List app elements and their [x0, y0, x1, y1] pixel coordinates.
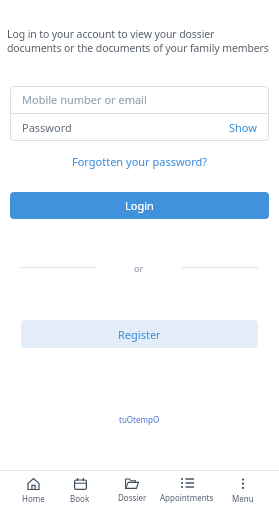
button[interactable]: Book — [50, 471, 110, 512]
button[interactable]: Menu — [213, 471, 273, 512]
button[interactable]: Show — [229, 120, 257, 135]
staticText: tuOtempO — [119, 414, 160, 425]
staticText: Mobile number or email — [22, 92, 147, 107]
staticText: Dossier — [118, 492, 147, 503]
staticText: Login — [125, 198, 154, 213]
button[interactable]: Register — [21, 320, 258, 348]
staticText: Register — [118, 327, 161, 342]
staticText: Appointments — [160, 492, 214, 503]
button[interactable]: Appointments — [157, 471, 217, 512]
staticText: Book — [70, 493, 90, 504]
button[interactable]: Forgotten your password? — [72, 154, 208, 169]
staticText: or — [134, 262, 144, 274]
button[interactable]: Home — [3, 471, 63, 512]
button[interactable]: Login — [10, 192, 269, 219]
staticText: Password — [22, 120, 72, 135]
button[interactable]: Password — [10, 114, 269, 141]
button[interactable]: Dossier — [102, 471, 162, 512]
staticText: Log in to your account to view your doss… — [7, 27, 269, 55]
staticText: Menu — [232, 493, 254, 504]
button[interactable]: Mobile number or email — [10, 86, 269, 113]
staticText: Home — [22, 493, 45, 504]
